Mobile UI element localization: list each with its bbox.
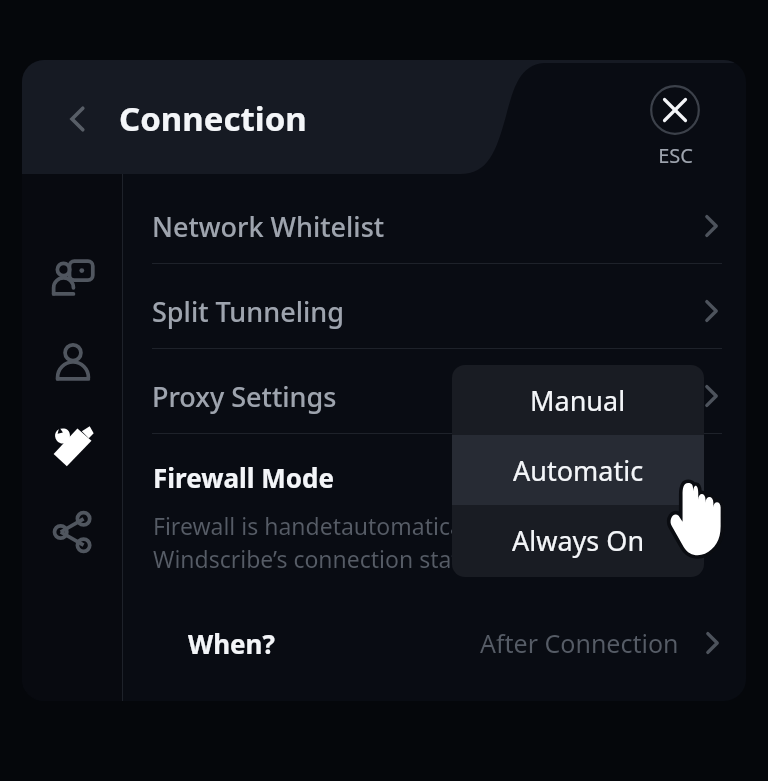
- staticText: Firewall Mode: [153, 460, 334, 495]
- staticText: Network Whitelist: [152, 208, 385, 245]
- staticText: Proxy Settings: [152, 378, 337, 415]
- button[interactable]: Close: [635, 85, 715, 169]
- button[interactable]: Split Tunneling: [152, 278, 724, 344]
- staticText: ESC: [658, 142, 693, 169]
- staticText: Always On: [512, 522, 645, 559]
- button[interactable]: Back: [50, 91, 106, 147]
- button[interactable]: Tools: [46, 420, 100, 474]
- staticText: Automatic: [513, 452, 644, 489]
- button[interactable]: When?: [188, 614, 725, 672]
- button[interactable]: Automatic: [452, 435, 704, 505]
- button[interactable]: Connection: [46, 250, 100, 304]
- button[interactable]: Network Whitelist: [152, 193, 724, 259]
- staticText: Manual: [530, 382, 626, 419]
- staticText: When?: [188, 626, 275, 661]
- button[interactable]: Account: [46, 335, 100, 389]
- button[interactable]: Proxy Settings: [152, 363, 724, 429]
- staticText: Split Tunneling: [152, 293, 344, 330]
- staticText: Connection: [119, 96, 307, 141]
- button[interactable]: Share: [46, 505, 100, 559]
- button[interactable]: Always On: [452, 505, 704, 575]
- staticText: Firewall is handetautomatically based on…: [153, 510, 592, 575]
- staticText: After Connection: [480, 626, 679, 660]
- button[interactable]: Manual: [452, 365, 704, 435]
